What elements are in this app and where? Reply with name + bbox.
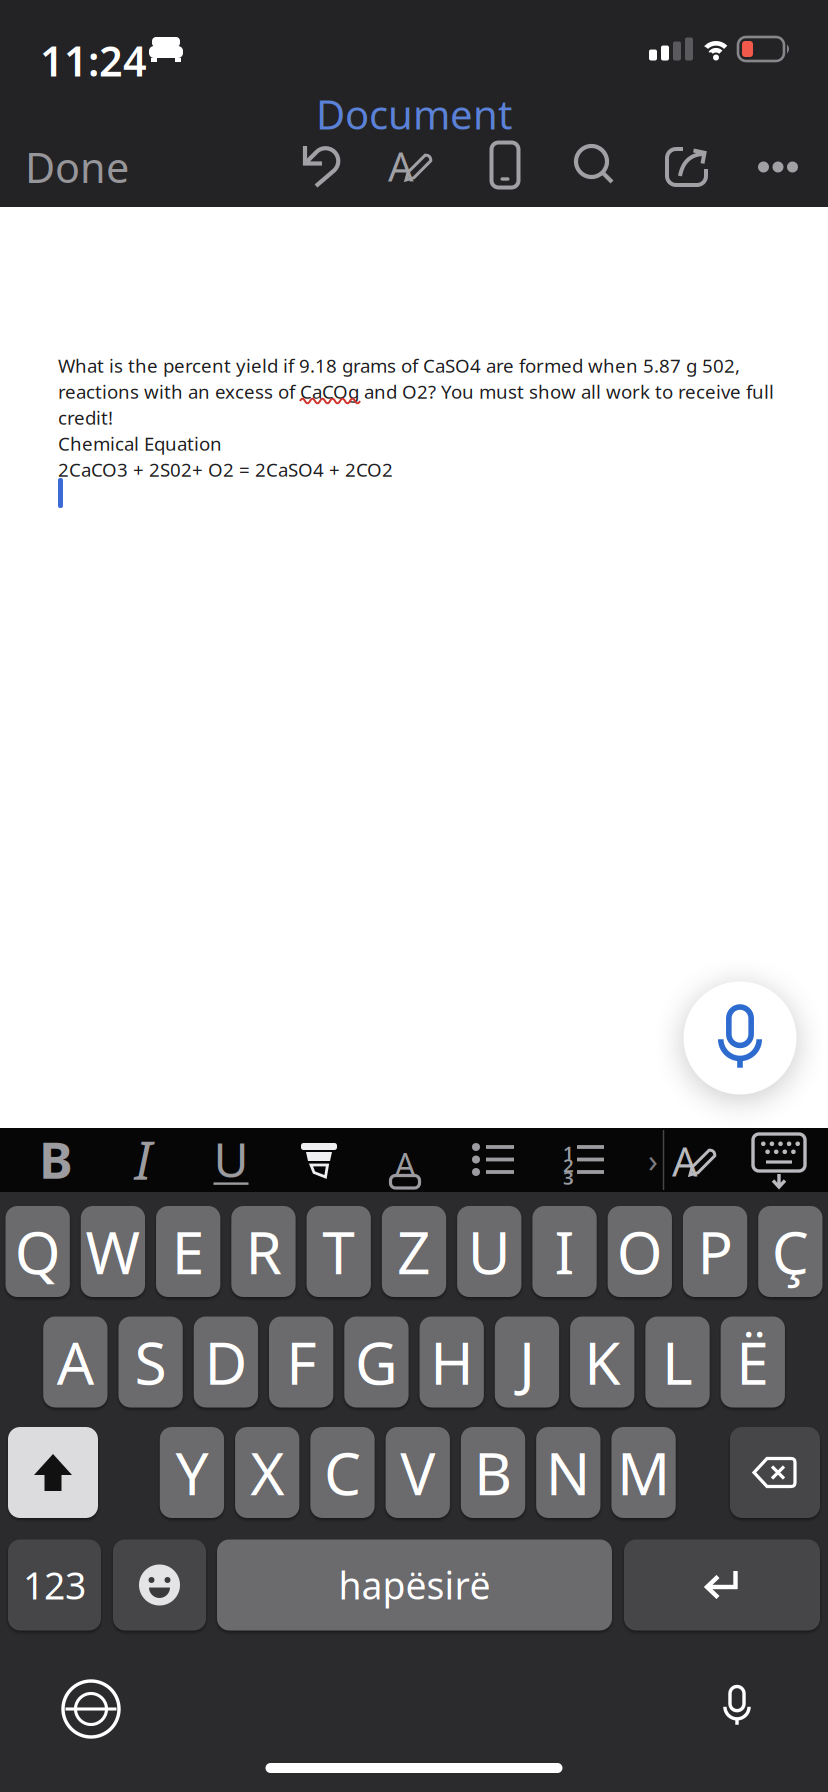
staticText: U (213, 1127, 248, 1191)
button[interactable]: Dictation (722, 1686, 752, 1725)
button[interactable]: G (344, 1316, 409, 1407)
button[interactable]: hapësirë (217, 1539, 612, 1630)
staticText: reactions with an excess of CaCOg and O2… (58, 379, 774, 404)
button[interactable]: U (457, 1206, 521, 1297)
staticText: 3 (563, 1165, 574, 1190)
staticText: O (617, 1212, 663, 1290)
staticText: Y (175, 1433, 208, 1511)
button[interactable]: B (461, 1427, 525, 1518)
button[interactable]: A (43, 1316, 107, 1407)
button[interactable]: F (269, 1316, 333, 1407)
button[interactable]: X (235, 1427, 299, 1518)
staticText: H (430, 1323, 473, 1401)
staticText: B (39, 1125, 73, 1193)
staticText: J (519, 1323, 535, 1401)
button[interactable]: Hide keyboard (753, 1134, 805, 1190)
staticText: L (662, 1323, 693, 1401)
staticText: A (672, 1134, 698, 1187)
button[interactable]: Dictate (683, 981, 796, 1094)
button[interactable]: J (495, 1316, 559, 1407)
button[interactable]: R (231, 1206, 296, 1297)
staticText: T (322, 1212, 355, 1290)
staticText: A (57, 1323, 94, 1401)
staticText: M (617, 1433, 670, 1511)
button[interactable]: Next keyboard (63, 1681, 119, 1737)
button[interactable]: H (419, 1316, 484, 1407)
staticText: V (400, 1433, 435, 1511)
staticText: What is the percent yield if 9.18 grams … (58, 353, 740, 378)
button[interactable]: Delete (730, 1427, 820, 1518)
staticText: D (204, 1323, 247, 1401)
staticText: Chemical Equation (58, 431, 222, 456)
button[interactable]: N (536, 1427, 600, 1518)
button[interactable]: I (532, 1206, 597, 1297)
button[interactable]: Bold (21, 1129, 91, 1189)
button[interactable]: W (81, 1206, 145, 1297)
button[interactable]: Bullets (472, 1144, 514, 1176)
button[interactable]: Format text (388, 143, 438, 189)
staticText: Q (15, 1212, 61, 1290)
staticText: Ë (736, 1323, 769, 1401)
staticText: A (388, 139, 414, 192)
button[interactable]: Ç (758, 1206, 822, 1297)
staticText: 2CaCO3 + 2S02+ O2 = 2CaSO4 + 2CO2 (58, 457, 393, 482)
button[interactable]: Highlight (301, 1139, 337, 1181)
staticText: U (468, 1212, 511, 1290)
staticText: X (250, 1433, 284, 1511)
button[interactable]: D (194, 1316, 258, 1407)
staticText: › (648, 1139, 658, 1181)
button[interactable]: Mobile view (489, 140, 521, 190)
staticText: hapësirë (338, 1560, 490, 1610)
button[interactable]: O (608, 1206, 672, 1297)
staticText: A (394, 1142, 415, 1186)
staticText: S (135, 1323, 167, 1401)
staticText: I (554, 1212, 574, 1290)
staticText: B (474, 1433, 512, 1511)
staticText: W (85, 1212, 140, 1290)
button[interactable]: Return (624, 1539, 820, 1630)
staticText: Ç (772, 1212, 809, 1290)
button[interactable]: C (310, 1427, 375, 1518)
button[interactable]: P (683, 1206, 747, 1297)
staticText: P (698, 1212, 733, 1290)
staticText: 123 (23, 1560, 86, 1610)
button[interactable]: Undo (297, 143, 343, 189)
button[interactable]: Emoji (113, 1539, 206, 1630)
button[interactable]: More options (758, 161, 798, 173)
staticText: credit! (58, 405, 113, 430)
staticText: 1 (563, 1140, 574, 1165)
button[interactable]: Search (576, 146, 614, 184)
staticText: R (245, 1212, 281, 1290)
button[interactable]: L (645, 1316, 710, 1407)
staticText: Document (316, 87, 512, 140)
staticText: C (324, 1433, 361, 1511)
button[interactable]: Numbering (562, 1144, 604, 1176)
button[interactable]: Ë (721, 1316, 785, 1407)
button[interactable]: Z (382, 1206, 446, 1297)
button[interactable]: Done (25, 140, 129, 194)
staticText: N (546, 1433, 591, 1511)
button[interactable]: Q (5, 1206, 70, 1297)
staticText: 2 (563, 1152, 574, 1177)
staticText: 11:24 (40, 33, 147, 88)
staticText: Z (397, 1212, 431, 1290)
staticText: G (355, 1323, 398, 1401)
button[interactable]: E (156, 1206, 220, 1297)
staticText: I (134, 1124, 151, 1194)
button[interactable]: V (386, 1427, 450, 1518)
button[interactable]: Shift (8, 1427, 98, 1518)
button[interactable]: K (570, 1316, 634, 1407)
button[interactable]: Formatting (672, 1138, 722, 1184)
button[interactable]: S (118, 1316, 183, 1407)
button[interactable]: M (611, 1427, 676, 1518)
button[interactable]: Share (666, 147, 708, 187)
staticText: Done (25, 140, 129, 194)
staticText: F (286, 1323, 316, 1401)
button[interactable]: 123 (8, 1539, 101, 1630)
button[interactable]: Italic (108, 1129, 178, 1189)
button[interactable]: Font color (388, 1140, 422, 1180)
button[interactable]: Underline (196, 1129, 266, 1189)
button[interactable]: Y (160, 1427, 224, 1518)
staticText: E (172, 1212, 205, 1290)
button[interactable]: T (307, 1206, 371, 1297)
